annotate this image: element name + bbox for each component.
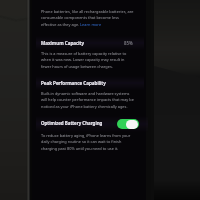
staticText: when it was new. Lower capacity may resu… [41,57,125,62]
staticText: Built-in dynamic software and hardware s… [41,91,130,96]
staticText: will help counter performance impacts th… [41,97,134,102]
staticText: 85% [124,40,133,46]
staticText: noticed as your iPhone battery chemicall… [41,104,128,109]
staticText: Maximum Capacity [41,40,84,46]
staticText: Learn more [80,22,102,27]
staticText: Peak Performance Capability [41,80,106,86]
staticText: Optimized Battery Charging [41,120,103,126]
staticText: charging past 80% until you need to use … [41,146,119,151]
button[interactable]: Optimized Battery Charging toggle [117,119,139,129]
staticText: daily charging routine so it can wait to… [41,139,122,144]
staticText: Phone batteries, like all rechargeable b… [41,9,134,14]
staticText: This is a measure of battery capacity re… [41,51,127,56]
staticText: To reduce battery aging, iPhone learns f… [41,133,131,138]
staticText: effective as they age. [41,22,80,27]
staticText: consumable components that become less [41,15,119,20]
staticText: fewer hours of usage between charges. [41,64,113,69]
